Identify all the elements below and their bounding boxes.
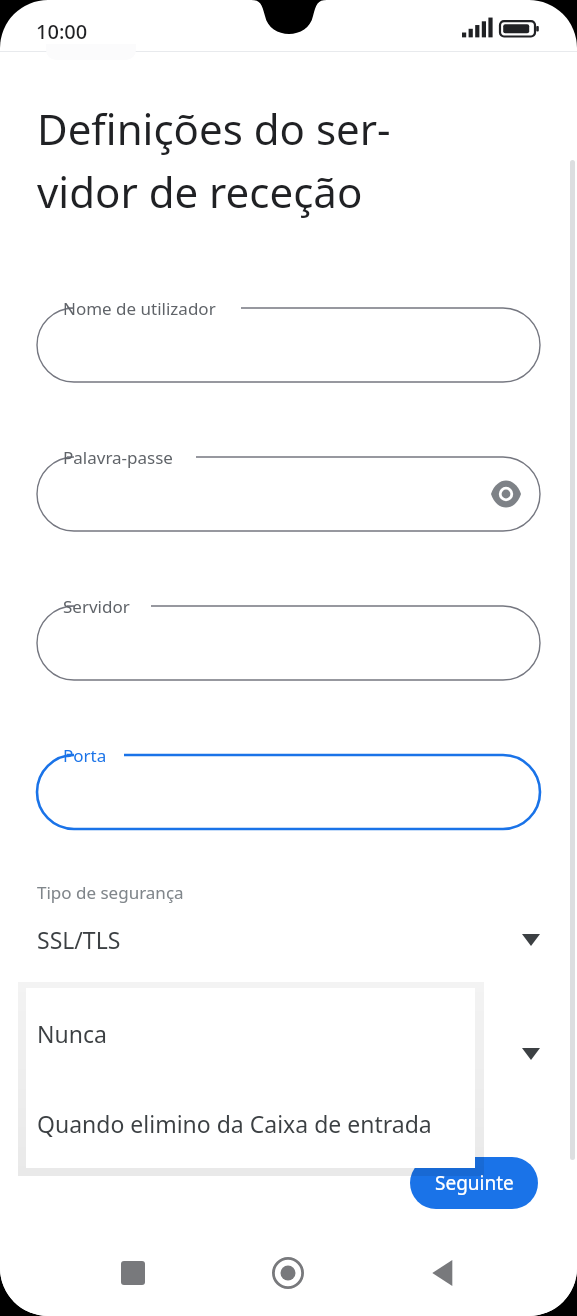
button[interactable]: Nome de utilizador	[37, 294, 540, 390]
staticText: Nome de utilizador	[63, 297, 216, 320]
button[interactable]: Tipo de segurança	[0, 881, 577, 955]
staticText: Palavra-passe	[63, 446, 173, 469]
staticText: SSL/TLS	[37, 924, 522, 955]
staticText: Nunca	[37, 1018, 107, 1049]
button[interactable]: Nunca	[26, 988, 475, 1078]
button[interactable]: Servidor	[37, 592, 540, 688]
staticText: Quando elimino da Caixa de entrada	[37, 1108, 432, 1139]
button[interactable]: Quando elimino da Caixa de entrada	[26, 1078, 475, 1168]
staticText: Servidor	[63, 595, 130, 618]
staticText: Porta	[63, 744, 107, 767]
staticText: Nunca	[37, 1038, 522, 1069]
staticText: Definições do ser-	[37, 100, 391, 157]
button[interactable]: Recent apps	[96, 1236, 170, 1310]
staticText: 10:00	[36, 18, 88, 45]
button[interactable]: Eliminar email do servidor	[0, 995, 577, 1069]
staticText: Tipo de segurança	[37, 881, 184, 904]
button[interactable]: Porta	[37, 741, 540, 837]
button[interactable]: Palavra-passe	[37, 443, 540, 539]
button[interactable]: Back	[407, 1236, 481, 1310]
button[interactable]: Seguinte	[410, 1157, 538, 1209]
staticText: vidor de receção	[37, 163, 363, 220]
button[interactable]: Home	[251, 1236, 325, 1310]
staticText: Seguinte	[435, 1170, 514, 1196]
